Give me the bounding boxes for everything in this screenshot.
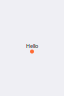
staticText: Hello: [26, 42, 38, 50]
